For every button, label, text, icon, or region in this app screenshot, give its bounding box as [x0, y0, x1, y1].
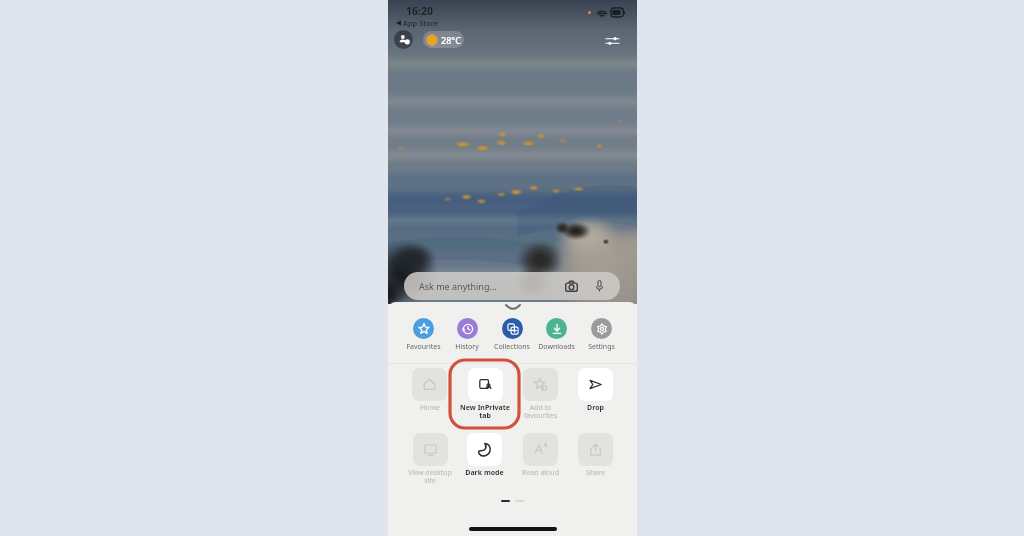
staticText: Dark mode [465, 468, 504, 478]
button[interactable]: Settings [579, 318, 623, 352]
button[interactable]: Favourites [401, 318, 445, 352]
staticText: Collections [494, 342, 530, 352]
button[interactable]: Downloads [534, 318, 578, 352]
staticText: Share [586, 468, 605, 478]
button[interactable]: Dark mode [457, 433, 512, 478]
staticText: View desktop site [408, 468, 452, 485]
button[interactable]: View desktop site [402, 433, 457, 485]
staticText: New InPrivate tab [460, 403, 510, 420]
staticText: 16:20 [406, 4, 433, 18]
button[interactable]: Voice search [591, 278, 607, 294]
button[interactable]: Ask me anything... [404, 272, 620, 300]
button[interactable]: Read aloud [513, 433, 568, 478]
staticText: Ask me anything... [419, 280, 497, 292]
button[interactable]: Camera search [563, 278, 579, 294]
button[interactable]: New InPrivate tab [457, 368, 512, 420]
button[interactable]: Share [568, 433, 623, 478]
staticText: App Store [403, 18, 439, 28]
staticText: 28°C [441, 34, 461, 46]
staticText: Read aloud [522, 468, 559, 478]
button[interactable]: History [445, 318, 489, 352]
staticText: Home [420, 403, 440, 413]
staticText: History [455, 342, 479, 352]
staticText: Settings [588, 342, 615, 352]
button[interactable]: Profile [394, 30, 413, 49]
staticText: Drop [587, 403, 604, 413]
staticText: Add to favourites [524, 403, 557, 420]
staticText: Favourites [406, 342, 441, 352]
button[interactable]: Add to favourites [513, 368, 568, 420]
button[interactable]: Collections [490, 318, 534, 352]
button[interactable]: Home [402, 368, 457, 413]
button[interactable]: Drop [568, 368, 623, 413]
staticText: Downloads [538, 342, 575, 352]
button[interactable]: 28°C [423, 31, 464, 48]
button[interactable]: Settings [602, 30, 623, 51]
